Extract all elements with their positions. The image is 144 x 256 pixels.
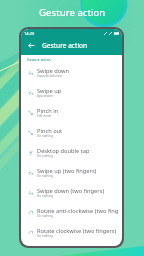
staticText: 14:20 — [24, 31, 35, 36]
button[interactable]: Swipe up — [21, 83, 122, 103]
staticText: App drawer — [37, 94, 54, 99]
staticText: Expand status bar — [37, 74, 63, 79]
button[interactable]: Desktop double tap — [21, 143, 122, 163]
button[interactable]: Rotate anti-clockwise (two fing — [21, 203, 122, 223]
button[interactable]: Swipe down (two fingers) — [21, 183, 122, 203]
staticText: Pinch in — [37, 107, 59, 114]
staticText: Swipe up — [37, 87, 62, 94]
staticText: Swipe down — [37, 67, 70, 74]
button[interactable]: Swipe up (two fingers) — [21, 163, 122, 183]
staticText: Edit mode — [37, 114, 52, 119]
staticText: Swipe up (two fingers) — [37, 167, 97, 174]
staticText: Pinch out — [37, 127, 63, 134]
staticText: Swipe down (two fingers) — [37, 187, 105, 194]
staticText: Gesture action — [39, 6, 106, 19]
staticText: Do nothing — [37, 174, 53, 179]
staticText: Do nothing — [37, 134, 53, 139]
staticText: Rotate clockwise (two fingers) — [37, 227, 117, 234]
staticText: Do nothing — [37, 214, 53, 219]
button[interactable]: Swipe down — [21, 63, 122, 83]
staticText: Gesture action — [27, 57, 51, 62]
staticText: Gesture action — [42, 41, 88, 50]
staticText: Desktop double tap — [37, 147, 90, 154]
button[interactable]: Pinch in — [21, 103, 122, 123]
staticText: Do nothing — [37, 234, 53, 239]
button[interactable]: Pinch out — [21, 123, 122, 143]
staticText: Rotate anti-clockwise (two fing — [37, 207, 119, 214]
staticText: Do nothing — [37, 194, 53, 199]
staticText: Do nothing — [37, 154, 53, 159]
button[interactable]: Rotate clockwise (two fingers) — [21, 223, 122, 243]
button[interactable]: Back — [24, 38, 39, 52]
